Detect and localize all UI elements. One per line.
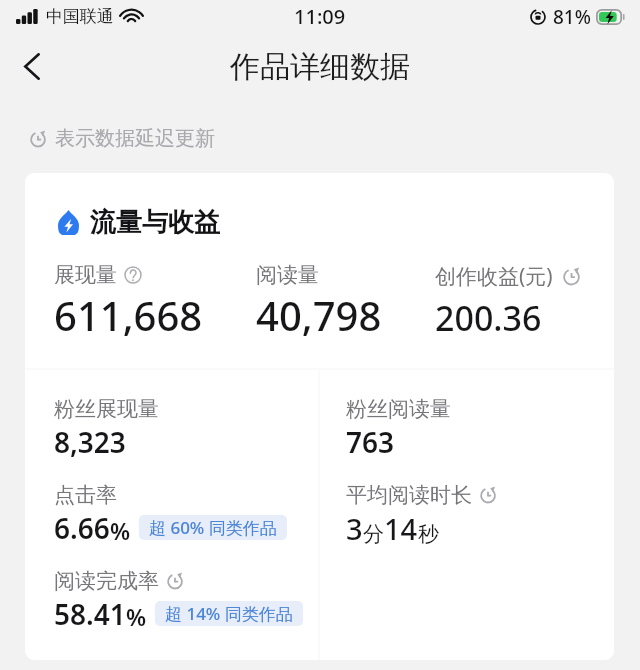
staticText: 超 60% 同类作品 xyxy=(149,516,277,539)
button[interactable]: 超 60% 同类作品 xyxy=(149,515,277,540)
staticText: 6.66 xyxy=(54,509,110,547)
staticText: 作品详细数据 xyxy=(230,48,410,86)
staticText: 中国联通 xyxy=(46,6,114,27)
staticText: % xyxy=(110,515,131,546)
staticText: 粉丝展现量 xyxy=(54,396,159,422)
staticText: 秒 xyxy=(418,521,439,547)
staticText: 3 xyxy=(346,509,363,548)
staticText: 流量与收益 xyxy=(90,206,220,239)
staticText: 粉丝阅读量 xyxy=(346,396,451,422)
staticText: 表示数据延迟更新 xyxy=(55,126,215,151)
staticText: 阅读量 xyxy=(256,262,319,288)
staticText: 14 xyxy=(384,509,418,548)
staticText: 超 14% 同类作品 xyxy=(165,602,293,625)
staticText: 200.36 xyxy=(435,295,542,341)
staticText: 58.41 xyxy=(54,595,126,633)
staticText: 81% xyxy=(553,4,591,30)
staticText: 点击率 xyxy=(54,482,117,508)
staticText: 611,668 xyxy=(54,288,203,342)
staticText: 40,798 xyxy=(256,288,382,342)
staticText: 11:09 xyxy=(294,3,346,30)
staticText: 阅读完成率 xyxy=(54,568,159,594)
staticText: 763 xyxy=(346,423,395,461)
staticText: 展现量 xyxy=(54,262,117,288)
staticText: 创作收益(元) xyxy=(435,262,553,291)
staticText: 分 xyxy=(363,521,384,547)
button[interactable]: Back xyxy=(7,41,57,91)
staticText: 8,323 xyxy=(54,423,126,461)
button[interactable]: 超 14% 同类作品 xyxy=(165,601,293,626)
staticText: % xyxy=(126,601,147,632)
staticText: 平均阅读时长 xyxy=(346,482,472,508)
